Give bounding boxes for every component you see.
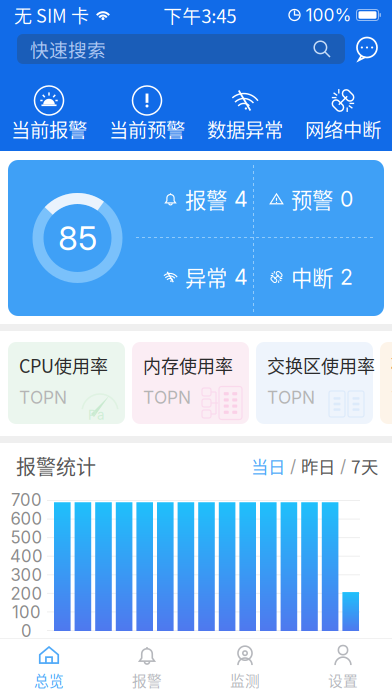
staticText: 100 [12, 602, 41, 622]
staticText: 0 [340, 186, 353, 212]
staticText: 100% [305, 4, 351, 25]
staticText: 网络中断 [305, 115, 381, 143]
staticText: 600 [10, 509, 42, 529]
staticText: 当日 [251, 453, 285, 479]
staticText: TOPN [391, 387, 392, 408]
staticText: 0 [21, 621, 32, 641]
button[interactable]: 当日 [251, 453, 285, 479]
staticText: 监测 [230, 669, 260, 691]
button[interactable]: 磁盘使用率 [380, 342, 392, 424]
staticText: / [335, 455, 351, 476]
button[interactable]: 7天 [351, 453, 378, 479]
staticText: 设置 [328, 669, 358, 691]
staticText: TOPN [19, 387, 67, 408]
button[interactable]: 总览 [0, 638, 98, 696]
button[interactable]: 内存使用率 [132, 342, 249, 424]
button[interactable]: 报警 [98, 638, 196, 696]
staticText: 磁盘使用率 [391, 352, 392, 378]
button[interactable]: 当前报警 [0, 86, 98, 138]
staticText: 4 [234, 264, 248, 290]
staticText: 数据异常 [207, 115, 283, 143]
staticText: 快速搜索 [30, 35, 106, 62]
staticText: TOPN [267, 387, 315, 408]
button[interactable]: 设置 [294, 638, 392, 696]
staticText: 85 [58, 218, 97, 258]
button[interactable]: 交换区使用率 [256, 342, 373, 424]
staticText: 昨日 [301, 453, 335, 479]
staticText: 内存使用率 [143, 352, 233, 378]
staticText: 4 [234, 186, 248, 212]
staticText: 异常 [185, 262, 227, 292]
staticText: 下午3:45 [163, 1, 236, 28]
staticText: 无 SIM 卡 [14, 2, 89, 28]
staticText: / [285, 455, 301, 476]
staticText: 200 [10, 583, 42, 604]
staticText: TOPN [143, 387, 191, 408]
button[interactable]: 昨日 [301, 453, 335, 479]
button[interactable]: 数据异常 [196, 86, 294, 138]
staticText: 总览 [34, 669, 64, 691]
staticText: Pa [88, 407, 104, 423]
button[interactable]: 监测 [196, 638, 294, 696]
staticText: 报警 [185, 184, 227, 214]
staticText: 报警 [132, 669, 162, 691]
staticText: 中断 [291, 262, 333, 292]
staticText: 400 [10, 546, 43, 566]
staticText: 2 [340, 264, 353, 290]
staticText: 当前报警 [11, 115, 87, 143]
button[interactable]: 消息 [354, 36, 379, 61]
button[interactable]: Pa [8, 342, 125, 424]
button[interactable]: 网络中断 [294, 86, 392, 138]
staticText: 当前预警 [109, 115, 185, 143]
staticText: 7天 [351, 453, 378, 479]
staticText: 预警 [291, 184, 333, 214]
staticText: CPU使用率 [19, 352, 108, 378]
staticText: 交换区使用率 [267, 352, 375, 378]
staticText: 300 [10, 565, 42, 585]
button[interactable]: 当前预警 [98, 86, 196, 138]
staticText: 报警统计 [16, 451, 96, 480]
button[interactable]: 快速搜索 [17, 34, 345, 64]
staticText: 500 [10, 527, 42, 547]
staticText: 700 [11, 490, 42, 510]
